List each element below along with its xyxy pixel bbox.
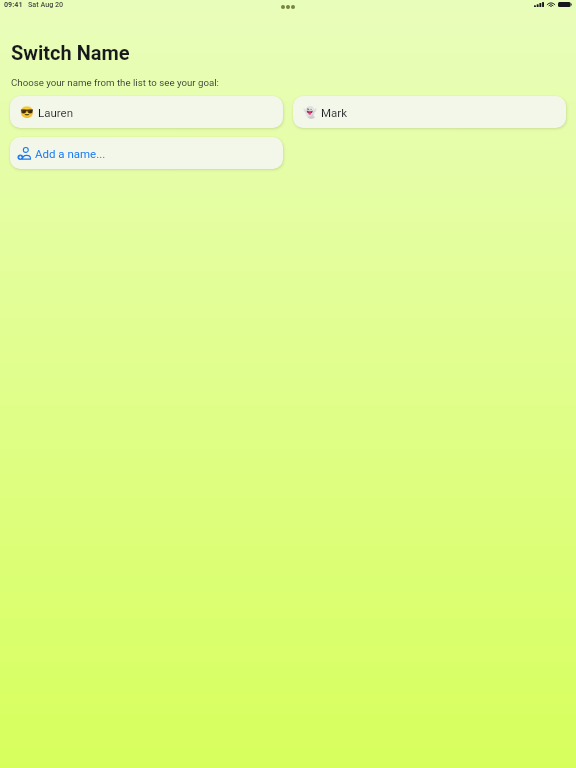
other: Wi-Fi [547,1,555,7]
staticText: 👻 [303,106,316,119]
staticText: 09:41 [4,0,23,8]
staticText: Sat Aug 20 [28,0,64,8]
button[interactable]: 👻 [293,96,566,128]
button[interactable]: 😎 [10,96,283,128]
other: Cellular signal [534,2,544,7]
staticText: Lauren [38,106,74,119]
staticText: Switch Name [11,41,130,64]
staticText: Choose your name from the list to see yo… [11,77,219,88]
staticText: Mark [321,106,348,119]
other: Battery [558,2,572,7]
staticText: Add a name... [35,147,106,160]
button[interactable]: Add a name... [10,137,283,169]
staticText: 😎 [20,106,33,119]
